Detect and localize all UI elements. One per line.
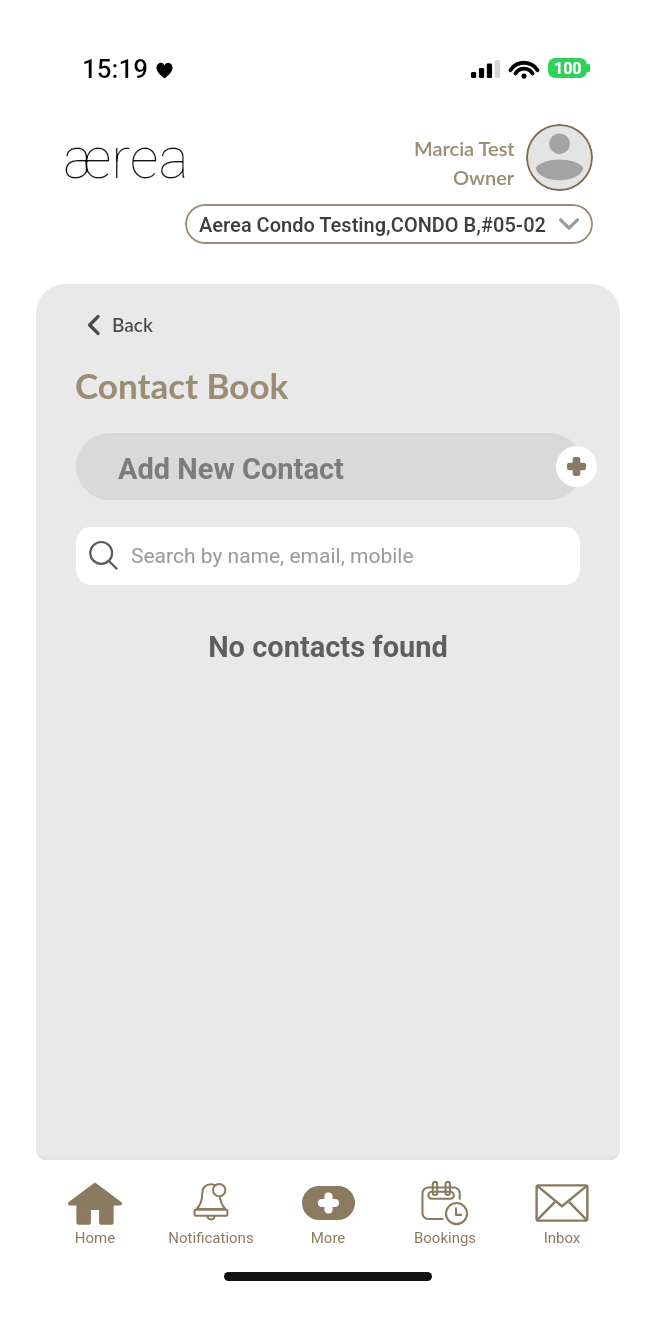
- button[interactable]: Back: [81, 308, 159, 341]
- button[interactable]: Inbox: [504, 1174, 620, 1250]
- staticText: 100: [554, 59, 582, 78]
- button[interactable]: Search by name, email, mobile: [76, 527, 580, 585]
- staticText: Aerea Condo Testing,CONDO B,#05-02: [199, 213, 546, 236]
- staticText: Notifications: [153, 1229, 269, 1247]
- staticText: No contacts found: [0, 630, 656, 664]
- staticText: Contact Book: [75, 364, 289, 406]
- button[interactable]: Profile: [526, 124, 593, 191]
- staticText: Inbox: [504, 1229, 620, 1247]
- staticText: More: [270, 1229, 386, 1247]
- staticText: ærea: [63, 125, 189, 192]
- button[interactable]: Notifications: [153, 1174, 269, 1250]
- staticText: Search by name, email, mobile: [131, 544, 414, 569]
- staticText: Back: [112, 313, 153, 336]
- staticText: Marcia Test: [414, 136, 515, 160]
- staticText: Owner: [453, 165, 515, 189]
- button[interactable]: More: [270, 1174, 386, 1250]
- button[interactable]: Add new contact: [556, 446, 597, 487]
- button[interactable]: Bookings: [387, 1174, 503, 1250]
- button[interactable]: Add New Contact: [76, 433, 583, 500]
- button[interactable]: Home: [37, 1174, 153, 1250]
- staticText: Bookings: [387, 1229, 503, 1247]
- staticText: 15:19: [82, 54, 148, 84]
- staticText: Home: [37, 1229, 153, 1247]
- button[interactable]: Aerea Condo Testing,CONDO B,#05-02: [185, 204, 593, 244]
- staticText: Add New Contact: [118, 452, 344, 486]
